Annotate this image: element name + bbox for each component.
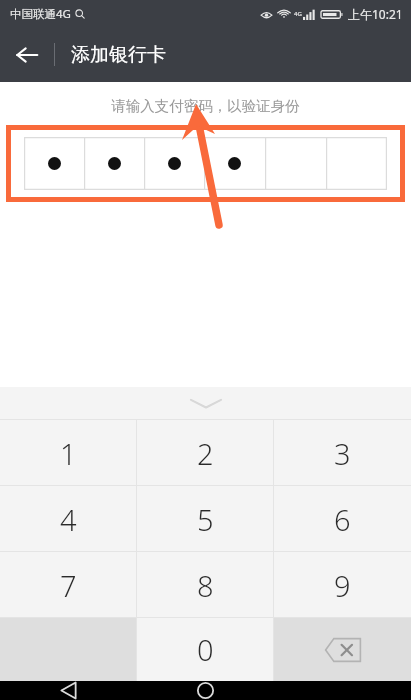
button[interactable]: Hide keyboard [0, 387, 411, 420]
button[interactable]: 6 [274, 486, 411, 552]
button[interactable]: 0 [137, 618, 274, 681]
staticText: 4 [60, 500, 77, 539]
staticText: 1 [60, 434, 77, 473]
button[interactable]: Back [0, 681, 137, 700]
button[interactable]: 2 [137, 420, 274, 486]
staticText: 添加银行卡 [71, 43, 166, 67]
staticText: 8 [197, 566, 214, 605]
staticText: 4G [294, 10, 302, 18]
button[interactable]: 3 [274, 420, 411, 486]
button[interactable]: 9 [274, 552, 411, 618]
button[interactable]: 4 [0, 486, 137, 552]
staticText: 6 [334, 500, 351, 539]
staticText: 0 [197, 630, 214, 669]
button[interactable] [24, 137, 387, 190]
button[interactable]: 8 [137, 552, 274, 618]
button[interactable]: Backspace [274, 618, 411, 681]
staticText: 5 [197, 500, 214, 539]
staticText: 中国联通4G [10, 6, 71, 22]
staticText: 9 [334, 566, 351, 605]
staticText: 请输入支付密码，以验证身份 [0, 97, 411, 115]
staticText: 7 [60, 566, 77, 605]
button[interactable]: Home [137, 681, 274, 700]
button[interactable]: Back [0, 28, 54, 82]
button[interactable]: 7 [0, 552, 137, 618]
staticText: 上午10:21 [348, 6, 403, 22]
button[interactable]: 1 [0, 420, 137, 486]
staticText: 2 [197, 434, 214, 473]
staticText: 3 [334, 434, 351, 473]
button[interactable]: 5 [137, 486, 274, 552]
